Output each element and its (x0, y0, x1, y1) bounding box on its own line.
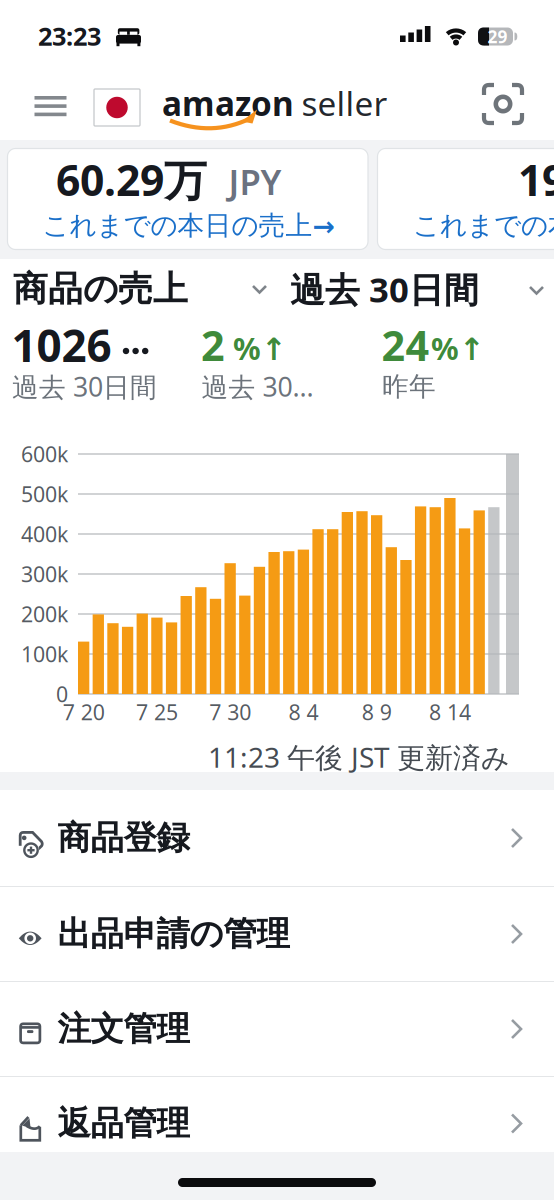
button[interactable]: 返品管理 (0, 1077, 554, 1152)
staticText: 注文管理 (57, 1008, 189, 1049)
staticText: 23:23 (38, 19, 101, 53)
staticText: 7 25 (136, 698, 178, 726)
staticText: 200k (21, 600, 68, 628)
staticText: 過去 30日間 (290, 266, 479, 312)
button[interactable]: 商品の売上 (0, 257, 280, 321)
staticText: これまでの本日の売上→ (413, 209, 554, 242)
staticText: %↑ (233, 328, 287, 368)
staticText: これまでの本日の売上→ (42, 209, 334, 242)
staticText: amazon (162, 81, 294, 125)
button[interactable]: 過去 30日間 (290, 257, 554, 321)
staticText: 2 (201, 318, 225, 372)
staticText: 500k (21, 480, 68, 508)
button[interactable]: 60.29万 (7, 148, 368, 249)
staticText: 11:23 午後 JST 更新済み (208, 738, 510, 776)
staticText: 29 (487, 25, 507, 48)
staticText: 商品の売上 (13, 268, 188, 310)
button[interactable]: 19万 (377, 148, 554, 249)
staticText: 8 14 (429, 698, 471, 726)
staticText: 7 20 (63, 698, 105, 726)
staticText: 24 (381, 318, 429, 372)
staticText: 7 30 (209, 698, 251, 726)
staticText: 8 9 (362, 698, 392, 726)
button[interactable]: Scan product (481, 82, 525, 126)
staticText: 過去 30日間 (12, 369, 157, 404)
button[interactable]: 出品申請の管理 (0, 887, 554, 981)
staticText: 商品登録 (57, 817, 189, 858)
staticText: 返品管理 (57, 1103, 189, 1144)
staticText: 300k (21, 560, 68, 588)
staticText: JPY (228, 158, 281, 204)
staticText: 出品申請の管理 (57, 913, 289, 954)
staticText: 8 4 (288, 698, 318, 726)
staticText: 100k (21, 640, 68, 668)
staticText: 1026 (11, 316, 111, 374)
button[interactable]: Menu (28, 87, 72, 125)
staticText: 過去 30... (201, 369, 313, 404)
staticText: 60.29万 (56, 151, 207, 208)
button[interactable]: Marketplace Japan (94, 89, 140, 126)
staticText: 昨年 (382, 370, 436, 403)
staticText: 0 (56, 680, 68, 708)
staticText: 19万 (518, 151, 554, 208)
button[interactable]: 商品登録 (0, 790, 554, 886)
staticText: 600k (21, 440, 68, 468)
staticText: %↑ (431, 328, 485, 368)
staticText: 400k (21, 520, 68, 548)
button[interactable]: 注文管理 (0, 982, 554, 1076)
staticText: seller (301, 81, 387, 125)
